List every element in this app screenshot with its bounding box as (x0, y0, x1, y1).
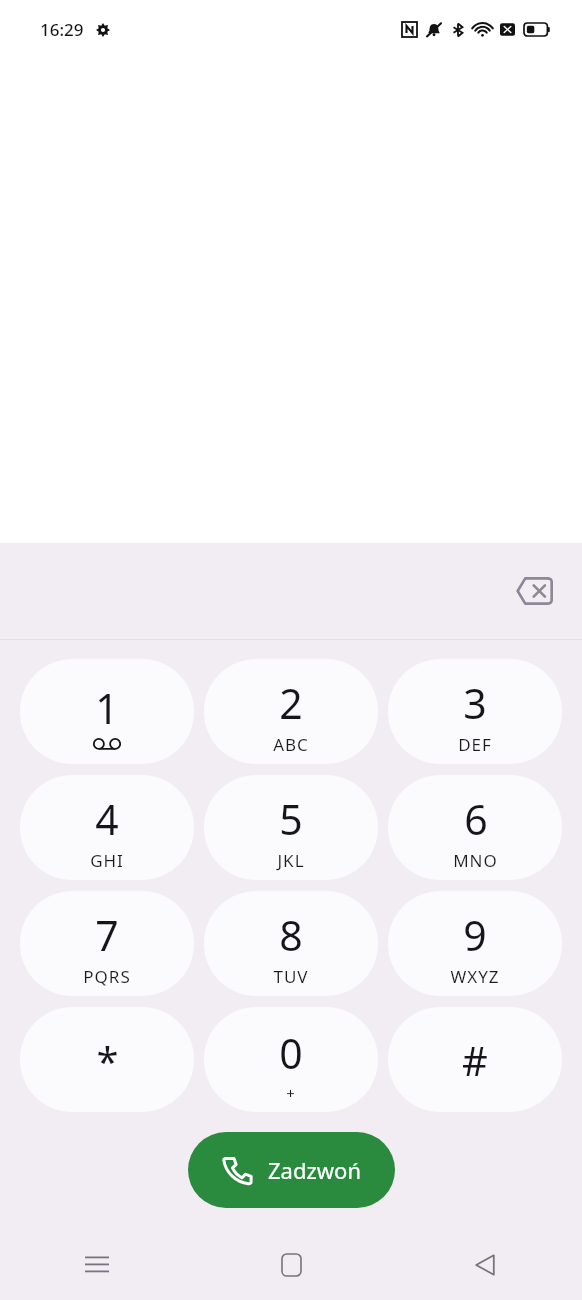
staticText: 6 (464, 791, 488, 847)
staticText: 9 (463, 907, 487, 963)
staticText: 8 (279, 907, 303, 963)
button[interactable]: 2 (204, 659, 378, 764)
button[interactable]: Backspace (506, 563, 562, 619)
staticText: + (286, 1083, 296, 1103)
staticText: 7 (95, 907, 119, 963)
staticText: WXYZ (450, 965, 500, 988)
button[interactable]: Home (194, 1230, 388, 1300)
staticText: ABC (273, 733, 309, 756)
button[interactable]: Zadzwoń (188, 1132, 395, 1208)
button[interactable]: 5 (204, 775, 378, 880)
staticText: 0 (279, 1025, 303, 1081)
staticText: 16:29 (40, 18, 84, 41)
staticText: 5 (279, 791, 303, 847)
staticText: TUV (273, 965, 309, 988)
staticText: 3 (463, 675, 487, 731)
staticText: 1 (95, 680, 119, 736)
staticText: MNO (453, 849, 498, 872)
button[interactable]: 6 (388, 775, 562, 880)
button[interactable]: 7 (20, 891, 194, 996)
staticText: PQRS (83, 965, 131, 988)
button[interactable]: 3 (388, 659, 562, 764)
staticText: Zadzwoń (268, 1155, 361, 1185)
button[interactable]: Back (388, 1230, 582, 1300)
staticText: 4 (95, 791, 119, 847)
button[interactable]: 4 (20, 775, 194, 880)
button[interactable]: * (20, 1007, 194, 1112)
staticText: * (96, 1033, 119, 1087)
staticText: # (462, 1033, 488, 1087)
staticText: JKL (277, 849, 305, 872)
button[interactable]: 8 (204, 891, 378, 996)
button[interactable]: Recent apps (0, 1230, 194, 1300)
button[interactable]: 0 (204, 1007, 378, 1112)
button[interactable]: # (388, 1007, 562, 1112)
staticText: 2 (279, 675, 303, 731)
staticText: DEF (458, 733, 492, 756)
staticText: GHI (90, 849, 124, 872)
button[interactable]: 9 (388, 891, 562, 996)
button[interactable]: 1 (20, 659, 194, 764)
